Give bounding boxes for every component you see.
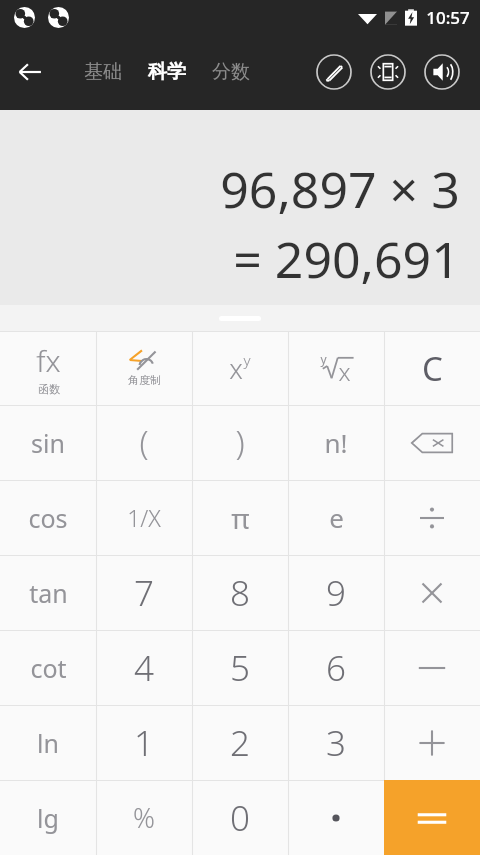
- staticText: 9: [326, 569, 346, 617]
- staticText: π: [231, 499, 250, 537]
- button[interactable]: tan: [0, 555, 96, 630]
- button[interactable]: cos: [0, 480, 96, 555]
- staticText: 5: [230, 644, 250, 692]
- staticText: 4: [134, 644, 154, 692]
- button[interactable]: 4: [96, 630, 192, 705]
- button[interactable]: y: [288, 331, 384, 405]
- staticText: 8: [230, 569, 250, 617]
- staticText: cot: [30, 651, 67, 685]
- staticText: tan: [29, 576, 68, 610]
- button[interactable]: [384, 630, 480, 705]
- staticText: 1/X: [127, 502, 161, 533]
- button[interactable]: Edit: [316, 54, 352, 90]
- staticText: = 290,691: [233, 225, 460, 293]
- button[interactable]: 角度制: [96, 331, 192, 405]
- button[interactable]: Vibration: [370, 54, 406, 90]
- staticText: x: [229, 350, 243, 387]
- staticText: lg: [37, 801, 59, 835]
- staticText: n!: [324, 425, 348, 460]
- staticText: %: [133, 799, 155, 836]
- staticText: x: [338, 355, 351, 388]
- button[interactable]: 9: [288, 555, 384, 630]
- staticText: sin: [31, 426, 65, 460]
- button[interactable]: Sound: [424, 54, 460, 90]
- button[interactable]: 7: [96, 555, 192, 630]
- staticText: cos: [28, 501, 68, 535]
- button[interactable]: 基础: [76, 50, 130, 94]
- button[interactable]: 0: [192, 780, 288, 855]
- button[interactable]: C: [384, 331, 480, 405]
- button[interactable]: 2: [192, 705, 288, 780]
- staticText: 1: [134, 719, 154, 767]
- button[interactable]: e: [288, 480, 384, 555]
- staticText: 96,897 × 3: [220, 155, 460, 223]
- button[interactable]: %: [96, 780, 192, 855]
- staticText: 基础: [84, 60, 122, 84]
- staticText: e: [329, 500, 344, 535]
- button[interactable]: ): [192, 405, 288, 480]
- button[interactable]: 3: [288, 705, 384, 780]
- staticText: 7: [134, 569, 154, 617]
- button[interactable]: n!: [288, 405, 384, 480]
- staticText: (: [139, 420, 149, 465]
- button[interactable]: 8: [192, 555, 288, 630]
- button[interactable]: 6: [288, 630, 384, 705]
- staticText: 2: [230, 719, 250, 767]
- staticText: 6: [326, 644, 346, 692]
- button[interactable]: 科学: [140, 50, 194, 94]
- staticText: 角度制: [128, 373, 161, 387]
- staticText: 科学: [148, 60, 186, 84]
- button[interactable]: lg: [0, 780, 96, 855]
- staticText: fx: [36, 340, 61, 381]
- button[interactable]: 1: [96, 705, 192, 780]
- button[interactable]: (: [96, 405, 192, 480]
- button[interactable]: ln: [0, 705, 96, 780]
- button[interactable]: [384, 405, 480, 480]
- button[interactable]: [384, 555, 480, 630]
- button[interactable]: 分数: [204, 50, 258, 94]
- button[interactable]: 5: [192, 630, 288, 705]
- button[interactable]: [384, 480, 480, 555]
- button[interactable]: [288, 780, 384, 855]
- staticText: C: [422, 346, 443, 391]
- staticText: y: [243, 350, 251, 370]
- button[interactable]: [384, 780, 480, 855]
- staticText: 0: [230, 794, 250, 842]
- staticText: ln: [37, 726, 59, 760]
- staticText: 10:57: [426, 6, 470, 29]
- staticText: y: [320, 351, 327, 367]
- staticText: 3: [326, 719, 346, 767]
- staticText: 函数: [38, 382, 60, 396]
- button[interactable]: fx: [0, 331, 96, 405]
- button[interactable]: [384, 705, 480, 780]
- button[interactable]: cot: [0, 630, 96, 705]
- button[interactable]: x: [192, 331, 288, 405]
- button[interactable]: π: [192, 480, 288, 555]
- staticText: ): [235, 420, 245, 465]
- staticText: 分数: [212, 60, 250, 84]
- button[interactable]: sin: [0, 405, 96, 480]
- button[interactable]: Back: [0, 34, 60, 110]
- button[interactable]: 1/X: [96, 480, 192, 555]
